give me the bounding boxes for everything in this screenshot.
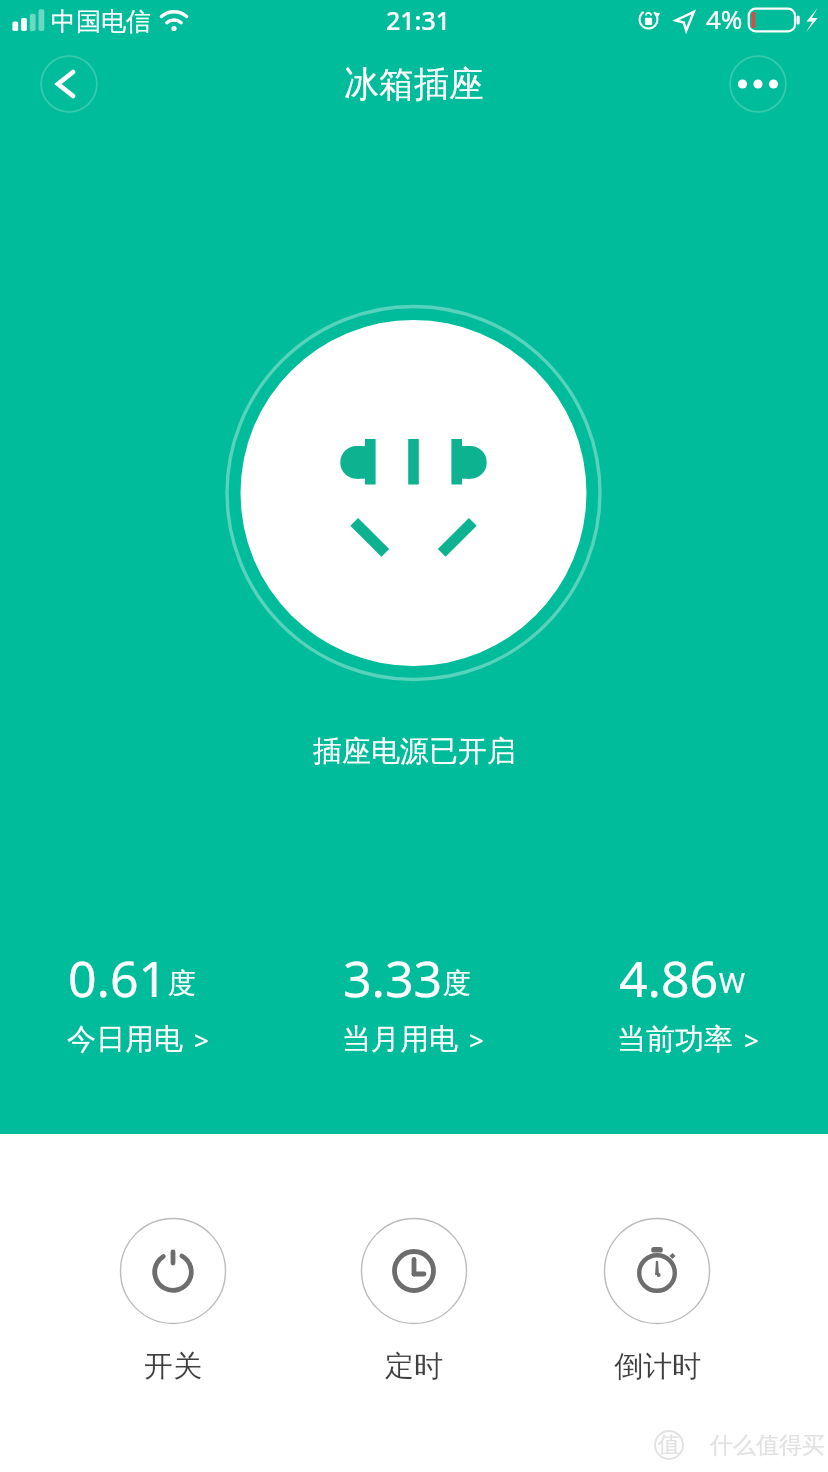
button[interactable]: 0.61 [8,944,268,1069]
staticText: 定时 [385,1348,443,1385]
staticText: > [469,1022,484,1057]
staticText: 0.61 [68,944,168,1012]
button[interactable]: Countdown [577,1212,737,1392]
staticText: > [194,1022,209,1057]
staticText: > [744,1022,759,1057]
staticText: 今日用电 [67,1021,183,1058]
staticText: 度 [443,966,471,1001]
staticText: 插座电源已开启 [313,733,516,770]
button[interactable]: Timer [334,1212,494,1392]
staticText: 21:31 [386,3,451,37]
button[interactable]: Back [40,55,98,113]
button[interactable]: Toggle socket power [227,307,600,680]
staticText: 开关 [144,1348,202,1385]
button[interactable]: 4.86 [558,944,818,1069]
button[interactable]: 3.33 [283,944,543,1069]
staticText: 中国电信 [51,6,151,37]
staticText: 4.86 [619,944,719,1012]
button[interactable]: More options [729,55,787,113]
staticText: 当前功率 [617,1021,733,1058]
staticText: 4% [706,1,743,36]
staticText: 度 [168,966,196,1001]
staticText: 当月用电 [342,1021,458,1058]
staticText: 3.33 [343,944,443,1012]
staticText: 值 [658,1431,680,1459]
staticText: 什么值得买 [710,1431,825,1460]
staticText: 倒计时 [614,1348,701,1385]
button[interactable]: Switch [93,1212,253,1392]
staticText: 冰箱插座 [344,62,484,106]
staticText: W [719,963,746,1001]
